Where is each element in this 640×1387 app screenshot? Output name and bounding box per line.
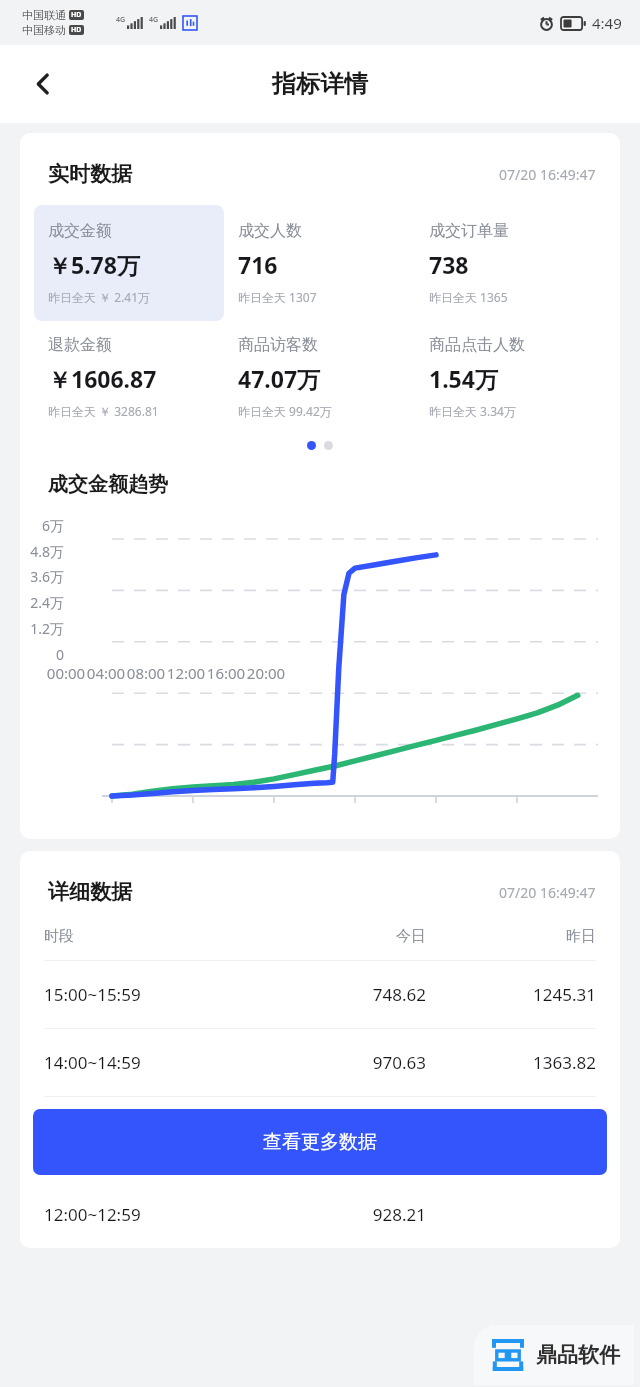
staticText: 昨日全天 ￥ 3286.81 bbox=[48, 403, 159, 419]
staticText: HD bbox=[71, 25, 82, 35]
button[interactable]: 查看更多数据 bbox=[33, 1109, 607, 1175]
button[interactable]: 退款金额 bbox=[34, 335, 224, 419]
staticText: 中国移动 bbox=[22, 23, 66, 37]
button[interactable]: 成交订单量 bbox=[415, 205, 606, 321]
staticText: 中国联通 bbox=[22, 8, 66, 22]
staticText: 退款金额 bbox=[48, 335, 112, 355]
staticText: 成交金额 bbox=[48, 221, 112, 241]
staticText: 成交订单量 bbox=[429, 221, 509, 241]
staticText: 1245.31 bbox=[426, 983, 596, 1006]
staticText: 748.62 bbox=[256, 983, 426, 1006]
staticText: 12:00 bbox=[163, 663, 209, 683]
staticText: 47.07万 bbox=[238, 363, 321, 394]
staticText: 1.2万 bbox=[20, 619, 64, 638]
staticText: 15:00~15:59 bbox=[44, 983, 256, 1006]
staticText: 2.4万 bbox=[20, 593, 64, 612]
staticText: 3.6万 bbox=[20, 567, 64, 586]
staticText: 1363.82 bbox=[426, 1051, 596, 1074]
staticText: ￥1606.87 bbox=[48, 363, 157, 394]
staticText: 14:00~14:59 bbox=[44, 1051, 256, 1074]
staticText: 4G bbox=[116, 15, 126, 25]
button[interactable]: Back bbox=[16, 57, 70, 111]
staticText: 昨日全天 3.34万 bbox=[429, 403, 516, 419]
staticText: 商品访客数 bbox=[238, 335, 318, 355]
staticText: 成交人数 bbox=[238, 221, 302, 241]
button[interactable]: 15:00~15:59 bbox=[20, 961, 620, 1028]
button[interactable]: 商品访客数 bbox=[224, 335, 415, 419]
staticText: 00:00 bbox=[43, 663, 89, 683]
staticText: 时段 bbox=[44, 927, 256, 946]
staticText: 08:00 bbox=[123, 663, 169, 683]
staticText: 970.63 bbox=[256, 1051, 426, 1074]
staticText: 1.54万 bbox=[429, 363, 498, 394]
staticText: 商品点击人数 bbox=[429, 335, 525, 355]
staticText: 鼎品软件 bbox=[536, 1342, 620, 1368]
staticText: 详细数据 bbox=[48, 879, 132, 905]
staticText: ￥5.78万 bbox=[48, 249, 140, 280]
button[interactable]: 商品点击人数 bbox=[415, 335, 606, 419]
staticText: 成交金额趋势 bbox=[48, 472, 168, 497]
staticText: 716 bbox=[238, 249, 278, 280]
staticText: 指标详情 bbox=[272, 69, 368, 99]
staticText: 4.8万 bbox=[20, 542, 64, 561]
staticText: 今日 bbox=[256, 927, 426, 946]
staticText: 昨日 bbox=[426, 927, 596, 946]
staticText: 928.21 bbox=[256, 1203, 426, 1226]
staticText: 昨日全天 1307 bbox=[238, 289, 317, 305]
button[interactable]: 12:00~12:59 bbox=[20, 1181, 620, 1248]
staticText: 16:00 bbox=[203, 663, 249, 683]
staticText: 4:49 bbox=[592, 13, 622, 33]
staticText: 昨日全天 99.42万 bbox=[238, 403, 332, 419]
staticText: 738 bbox=[429, 249, 469, 280]
staticText: 12:00~12:59 bbox=[44, 1203, 256, 1226]
staticText: 4G bbox=[149, 15, 159, 25]
staticText: 实时数据 bbox=[48, 161, 132, 187]
staticText: 07/20 16:49:47 bbox=[499, 883, 596, 902]
staticText: 昨日全天 1365 bbox=[429, 289, 508, 305]
button[interactable]: 成交金额 bbox=[34, 205, 224, 321]
staticText: 6万 bbox=[20, 516, 64, 535]
staticText: 查看更多数据 bbox=[263, 1130, 377, 1154]
staticText: 07/20 16:49:47 bbox=[499, 165, 596, 184]
staticText: HD bbox=[71, 10, 82, 20]
button[interactable]: 成交人数 bbox=[224, 205, 415, 321]
staticText: 0 bbox=[20, 645, 64, 664]
staticText: 04:00 bbox=[83, 663, 129, 683]
staticText: 昨日全天 ￥ 2.41万 bbox=[48, 289, 151, 305]
button[interactable]: 14:00~14:59 bbox=[20, 1029, 620, 1096]
staticText: 20:00 bbox=[243, 663, 289, 683]
